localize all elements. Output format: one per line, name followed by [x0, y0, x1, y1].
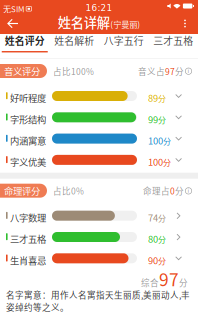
button[interactable]: 三才五格 — [0, 226, 198, 247]
staticText: 分 — [158, 233, 166, 245]
staticText: 内涵寓意 — [10, 134, 46, 147]
staticText: 分 — [158, 92, 166, 104]
staticText: 分 — [179, 276, 188, 289]
button[interactable]: 姓名评分 — [0, 34, 49, 59]
staticText: i — [187, 188, 189, 194]
staticText: 姓名解析 — [54, 33, 94, 48]
staticText: 姓名详解 — [58, 12, 110, 32]
button[interactable]: 字义优美 — [0, 149, 198, 170]
staticText: i — [187, 68, 189, 74]
staticText: 八字数理 — [10, 211, 46, 224]
staticText: 命理评分 — [4, 184, 40, 197]
staticText: 分 — [175, 65, 184, 77]
staticText: 分 — [158, 212, 166, 224]
staticText: 名字寓意：用作人名寓指天生丽质,美丽动人,丰姿绰约等之义。 — [6, 289, 190, 313]
button[interactable]: 更多 — [174, 13, 196, 34]
staticText: 无SIM — [3, 3, 24, 15]
staticText: 三才五格 — [153, 33, 193, 48]
staticText: 命理占 — [143, 185, 170, 197]
staticText: 分 — [163, 135, 171, 147]
staticText: 74 — [148, 211, 158, 224]
staticText: 分 — [163, 156, 171, 168]
staticText: 90 — [148, 253, 158, 267]
staticText: 100 — [148, 155, 163, 168]
staticText: (宁曼丽) — [110, 18, 140, 30]
staticText: 生肖喜忌 — [10, 253, 46, 267]
staticText: 占比0% — [53, 185, 84, 197]
staticText: 97 — [159, 266, 179, 291]
button[interactable]: 返回 — [1, 13, 25, 34]
staticText: 姓名评分 — [5, 33, 45, 48]
staticText: 音义评分 — [4, 64, 40, 78]
staticText: 99 — [148, 112, 158, 126]
button[interactable]: 生肖喜忌 — [0, 247, 198, 269]
staticText: 字形结构 — [10, 112, 46, 126]
button[interactable]: 好听程度 — [0, 85, 198, 106]
staticText: 综合 — [141, 276, 159, 289]
staticText: 分 — [158, 114, 166, 125]
staticText: 100 — [148, 134, 163, 147]
staticText: 分 — [158, 255, 166, 266]
button[interactable]: 八字数理 — [0, 205, 198, 226]
button[interactable]: 字形结构 — [0, 106, 198, 128]
staticText: 占比100% — [53, 65, 94, 77]
button[interactable]: 三才五格 — [148, 34, 198, 59]
button[interactable]: 姓名解析 — [49, 34, 99, 59]
staticText: 三才五格 — [10, 232, 46, 245]
staticText: 16:21 — [85, 3, 112, 13]
staticText: 八字五行 — [104, 33, 144, 48]
staticText: 分 — [175, 185, 184, 197]
staticText: 字义优美 — [10, 155, 46, 168]
staticText: 89 — [148, 91, 158, 104]
staticText: 音义占 — [138, 65, 165, 77]
staticText: 0 — [170, 185, 175, 197]
staticText: 好听程度 — [10, 91, 46, 104]
button[interactable]: 内涵寓意 — [0, 128, 198, 149]
staticText: 80 — [148, 232, 158, 245]
staticText: 97 — [165, 65, 175, 77]
button[interactable]: 八字五行 — [99, 34, 148, 59]
